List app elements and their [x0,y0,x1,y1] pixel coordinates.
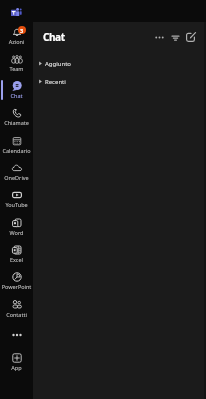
staticText: OneDrive [0,174,33,181]
button[interactable]: Microsoft Teams [5,1,28,21]
button[interactable]: Aggiunto [33,55,206,72]
button[interactable]: App [0,348,33,372]
staticText: Chiamate [0,119,33,126]
button[interactable]: YouTube [0,185,33,209]
staticText: PowerPoint [0,283,33,290]
button[interactable]: Calendario [0,131,33,155]
staticText: App [0,364,33,371]
button[interactable]: Contatti [0,295,33,319]
staticText: Excel [0,256,33,263]
staticText: Recenti [45,78,66,86]
staticText: Calendario [0,147,33,154]
staticText: Aggiunto [45,60,71,68]
button[interactable]: Word [0,213,33,237]
staticText: 3 [20,27,24,34]
button[interactable]: 3 [0,22,33,46]
staticText: YouTube [0,201,33,208]
button[interactable]: Excel [0,240,33,264]
button[interactable]: Recenti [33,73,206,90]
staticText: Word [0,229,33,236]
button[interactable]: Team [0,49,33,73]
button[interactable]: Chat [0,76,33,100]
staticText: Azioni [0,38,33,45]
button[interactable]: OneDrive [0,158,33,182]
staticText: Chat [0,92,33,99]
button[interactable]: PowerPoint [0,267,33,291]
button[interactable]: Altre opzioni [0,327,33,342]
button[interactable]: Altre opzioni [151,29,167,45]
staticText: Contatti [0,311,33,318]
staticText: Team [0,65,33,72]
staticText: Chat [43,30,65,44]
button[interactable]: Filtro [167,29,183,45]
button[interactable]: Chiamate [0,103,33,127]
button[interactable]: Nuova chat [183,29,199,45]
